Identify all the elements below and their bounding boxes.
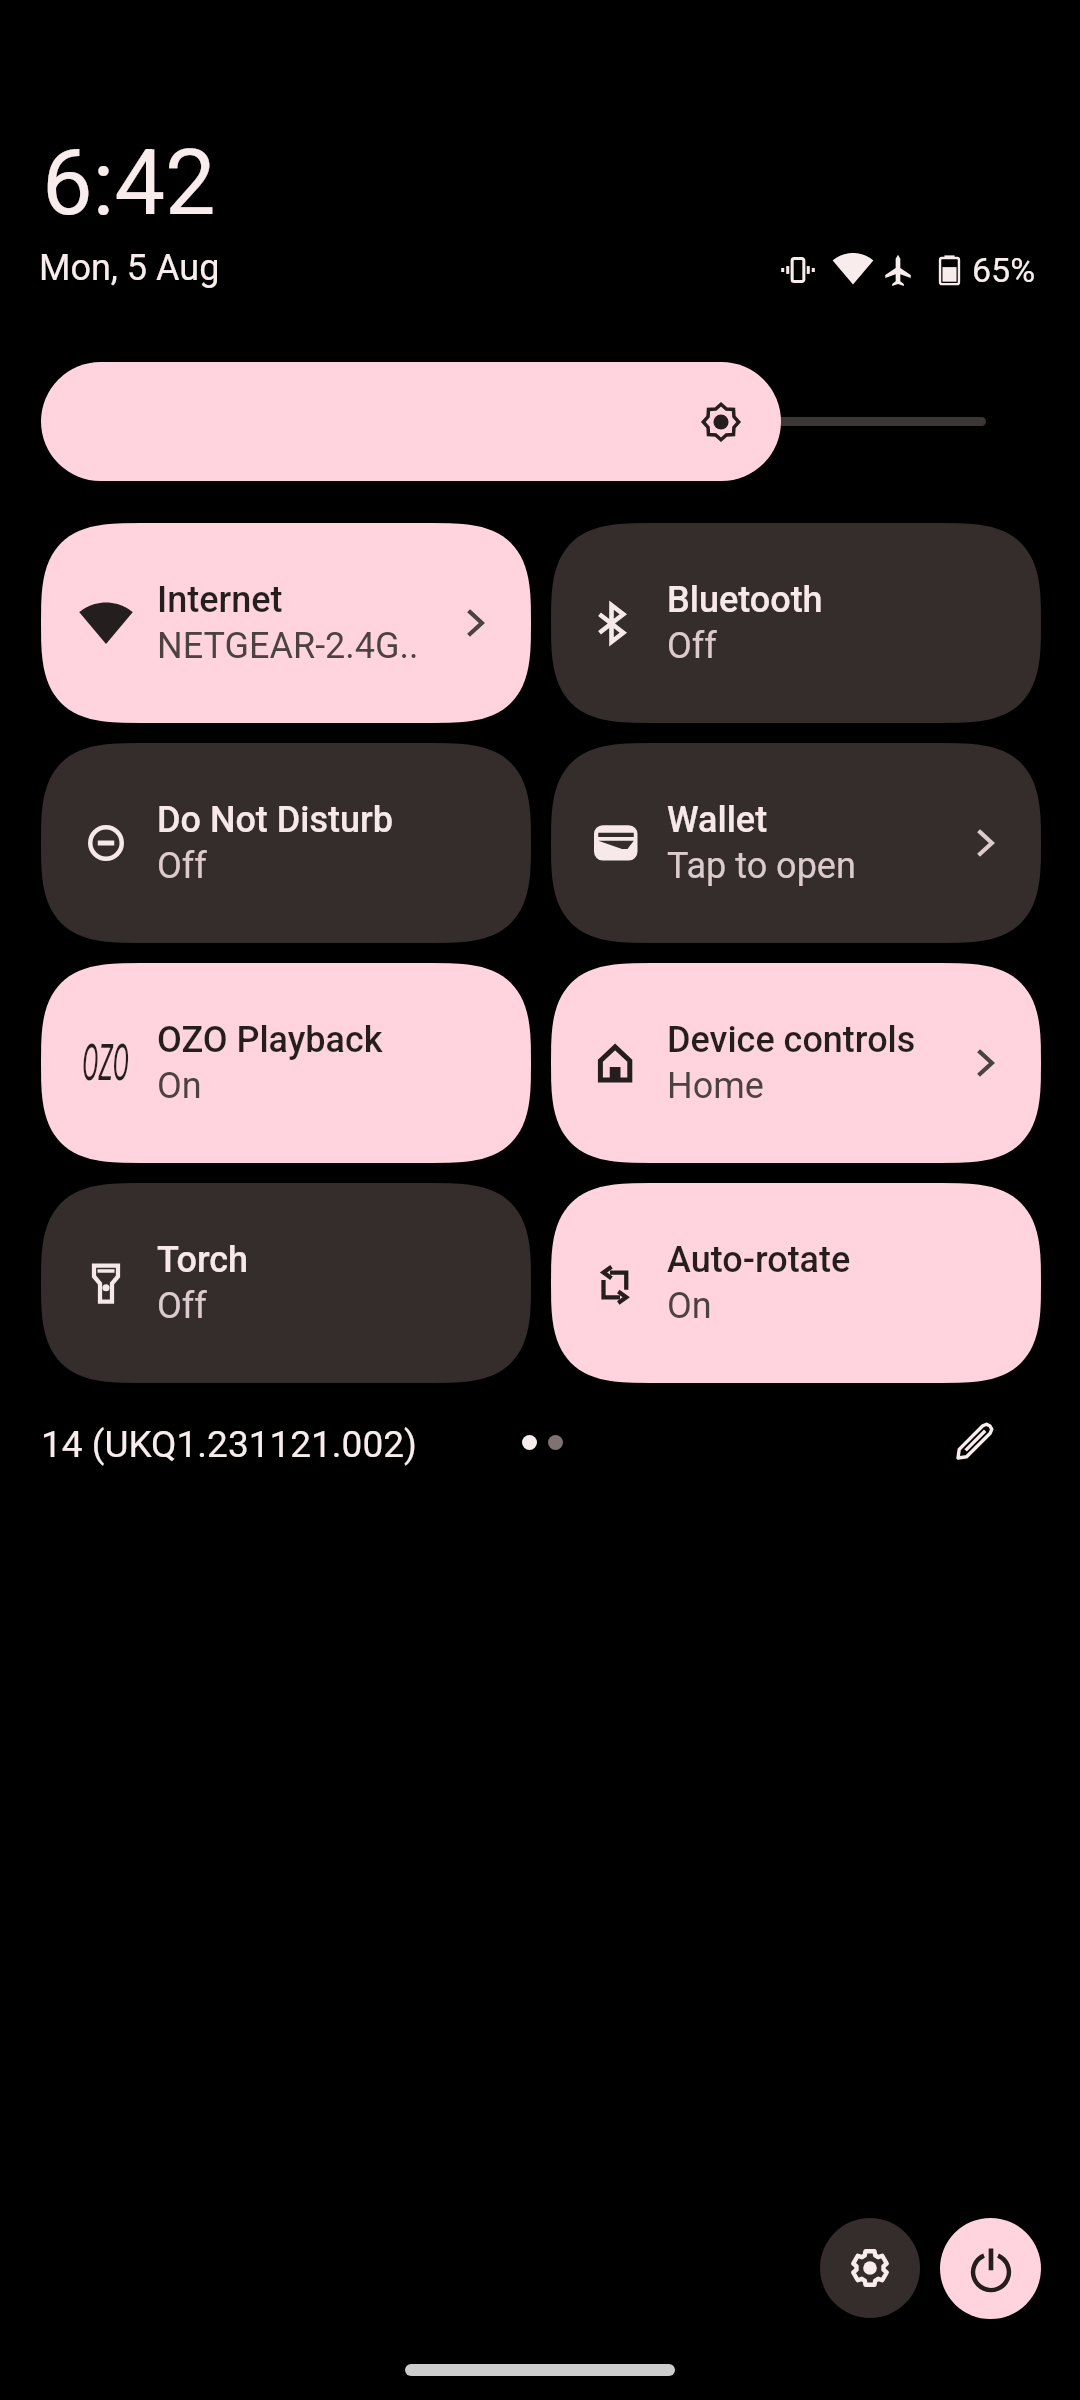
staticText: 65% [972, 250, 1036, 290]
staticText: Home [667, 1065, 764, 1107]
button[interactable]: Wallet [551, 743, 1041, 943]
staticText: On [157, 1065, 202, 1107]
staticText: Device controls [667, 1019, 916, 1061]
staticText: Mon, 5 Aug [39, 247, 220, 289]
staticText: NETGEAR-2.4G.. [157, 625, 419, 667]
staticText: Do Not Disturb [157, 799, 393, 841]
staticText: Off [667, 625, 717, 667]
button[interactable]: Brightness [41, 362, 781, 481]
button[interactable]: Do Not Disturb [41, 743, 531, 943]
staticText: Off [157, 1285, 207, 1327]
button[interactable]: Bluetooth [551, 523, 1041, 723]
button[interactable]: Internet [41, 523, 531, 723]
button[interactable]: Power [940, 2218, 1041, 2319]
staticText: OZO [82, 1033, 130, 1093]
staticText: Tap to open [667, 845, 856, 887]
staticText: Wallet [667, 799, 768, 841]
button[interactable]: Edit tiles [936, 1402, 1014, 1480]
staticText: OZO Playback [157, 1019, 383, 1061]
staticText: Off [157, 845, 207, 887]
staticText: Torch [157, 1239, 249, 1281]
staticText: Auto-rotate [667, 1239, 851, 1281]
staticText: Bluetooth [667, 579, 823, 621]
button[interactable]: Device controls [551, 963, 1041, 1163]
button[interactable]: Torch [41, 1183, 531, 1383]
button[interactable]: Auto-rotate [551, 1183, 1041, 1383]
staticText: On [667, 1285, 712, 1327]
button[interactable]: OZO [41, 963, 531, 1163]
button[interactable]: Settings [820, 2218, 920, 2318]
staticText: 14 (UKQ1.231121.002) [41, 1423, 417, 1466]
staticText: 6:42 [42, 131, 216, 236]
staticText: Internet [157, 579, 283, 621]
